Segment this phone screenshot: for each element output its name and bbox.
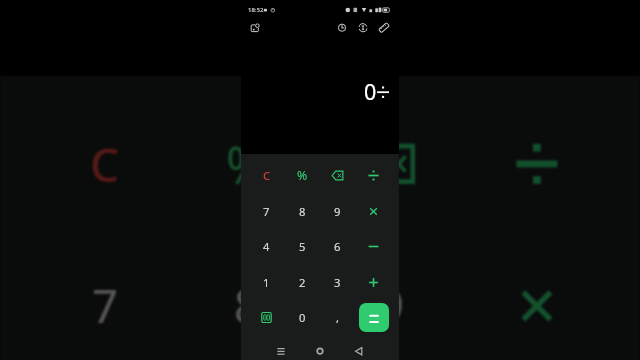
staticText: 7	[263, 204, 270, 219]
button[interactable]: 5	[285, 229, 320, 264]
button[interactable]: 1	[249, 265, 284, 300]
button[interactable]: 6	[320, 229, 355, 264]
button[interactable]: Floating window	[249, 21, 261, 34]
button[interactable]: ,	[320, 300, 355, 335]
button[interactable]: Recent apps	[275, 345, 287, 357]
staticText: 4	[263, 239, 270, 254]
button[interactable]: %	[285, 158, 320, 193]
staticText: 9	[378, 275, 404, 337]
button[interactable]: Divide	[466, 93, 608, 235]
button[interactable]: Divide	[356, 158, 391, 193]
button[interactable]: 0	[285, 300, 320, 335]
staticText: %	[226, 130, 268, 198]
button[interactable]: 2	[285, 265, 320, 300]
staticText: 6	[334, 239, 341, 254]
button[interactable]: Multiply	[466, 235, 608, 360]
button[interactable]: Back	[353, 345, 365, 357]
staticText: 8	[234, 275, 260, 337]
button[interactable]: 3	[320, 265, 355, 300]
button[interactable]: C	[34, 93, 176, 235]
button[interactable]: 9	[320, 194, 355, 229]
staticText: 2	[299, 275, 306, 290]
staticText: 5	[299, 239, 306, 254]
button[interactable]: Backspace	[320, 158, 355, 193]
staticText: %	[297, 167, 308, 184]
button[interactable]: 7	[249, 194, 284, 229]
staticText: 0	[299, 310, 306, 325]
staticText: 0	[364, 77, 377, 103]
staticText: 3	[334, 275, 341, 290]
staticText: 7	[92, 275, 118, 337]
button[interactable]: Multiply	[356, 194, 391, 229]
button[interactable]: 9	[320, 235, 462, 360]
button[interactable]: Subtract	[356, 229, 391, 264]
staticText: C	[263, 168, 271, 183]
button[interactable]: Add	[356, 265, 391, 300]
button[interactable]: 7	[34, 235, 176, 360]
staticText: ,	[336, 310, 339, 325]
staticText: 9	[334, 204, 341, 219]
staticText: 1	[263, 275, 270, 290]
button[interactable]: Currency converter	[357, 21, 369, 34]
button[interactable]: 8	[176, 235, 318, 360]
button[interactable]: 4	[249, 229, 284, 264]
button[interactable]: C	[249, 158, 284, 193]
button[interactable]: Home	[314, 345, 326, 357]
button[interactable]: %	[176, 93, 318, 235]
button[interactable]: 8	[285, 194, 320, 229]
button[interactable]	[359, 303, 389, 332]
button[interactable]: Unit converter	[378, 21, 390, 34]
button[interactable]: Scientific mode	[249, 300, 284, 335]
button[interactable]: Backspace	[320, 93, 462, 235]
staticText: 8	[299, 204, 306, 219]
staticText: C	[90, 133, 120, 195]
staticText: 18:52	[248, 6, 264, 14]
button[interactable]: History	[336, 21, 348, 34]
